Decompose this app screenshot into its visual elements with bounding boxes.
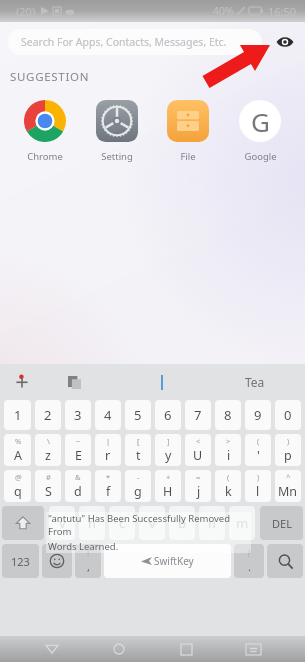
staticText: "antutu" Has Been Successfully Removed F… [48, 512, 249, 538]
staticText: 1 [14, 406, 22, 424]
staticText: n [88, 514, 97, 532]
staticText: n [208, 514, 217, 532]
button[interactable]: c [109, 506, 135, 540]
button[interactable]: Clipboard [62, 370, 86, 394]
button[interactable]: Home [104, 636, 134, 662]
button[interactable]: | [95, 434, 121, 466]
button[interactable]: Recents [171, 636, 201, 662]
button[interactable]: 5 [125, 400, 151, 430]
staticText: 40% [213, 4, 234, 18]
staticText: > [226, 436, 231, 446]
staticText: f [106, 483, 111, 500]
staticText: ' [257, 447, 260, 464]
button[interactable]: v [139, 506, 165, 540]
staticText: 16:50 [268, 4, 297, 19]
staticText: 4 [104, 406, 112, 424]
button[interactable]: > [215, 434, 241, 466]
button[interactable]: n [79, 506, 105, 540]
button[interactable]: ] [155, 434, 181, 466]
button[interactable]: ( [215, 470, 241, 502]
button[interactable]: 1 [4, 400, 31, 430]
staticText: Mn [278, 483, 298, 500]
button[interactable]: Space [104, 544, 231, 578]
staticText: ) [257, 472, 260, 482]
button[interactable]: File [155, 97, 221, 165]
button[interactable]: 8 [215, 400, 241, 430]
button[interactable]: ^ [275, 470, 301, 502]
button[interactable]: * [95, 470, 121, 502]
staticText: G [251, 104, 270, 139]
staticText: < [196, 436, 201, 446]
button[interactable]: Shift [2, 506, 44, 540]
button[interactable]: DEL [260, 506, 303, 540]
button[interactable]: 6 [155, 400, 181, 430]
staticText: q [14, 483, 22, 500]
button[interactable]: [ [125, 434, 151, 466]
button[interactable]: 2 [35, 400, 61, 430]
button[interactable]: < [185, 434, 211, 466]
staticText: % [15, 436, 22, 446]
button[interactable]: + [155, 470, 181, 502]
button[interactable]: # [35, 470, 61, 502]
button[interactable]: Comma [75, 544, 101, 578]
button[interactable]: @ [4, 470, 31, 502]
button[interactable]: Setting [84, 97, 150, 165]
button[interactable]: Add sticker [10, 370, 34, 394]
staticText: ! [87, 548, 90, 559]
staticText: z [45, 447, 51, 464]
button[interactable]: v [49, 506, 75, 540]
button[interactable]: b [169, 506, 195, 540]
button[interactable]: = [185, 470, 211, 502]
staticText: . [248, 559, 251, 574]
button[interactable]: ) [245, 470, 271, 502]
staticText: v [149, 514, 156, 532]
button[interactable]: G [227, 97, 293, 165]
button[interactable]: % [4, 434, 31, 466]
button[interactable]: - [125, 470, 151, 502]
button[interactable]: m [229, 506, 255, 540]
button[interactable]: Emoji [42, 544, 72, 578]
staticText: t [136, 447, 141, 464]
button[interactable]: Back [37, 636, 67, 662]
button[interactable]: 9 [245, 400, 271, 430]
staticText: Search For Apps, Contacts, Messages, Etc… [21, 35, 227, 49]
staticText: 3 [74, 406, 82, 424]
button[interactable]: 4 [95, 400, 121, 430]
staticText: @ [15, 472, 22, 482]
button[interactable]: Search For Apps, Contacts, Messages, Etc… [8, 29, 262, 55]
button[interactable]: \ [35, 434, 61, 466]
staticText: , [87, 559, 90, 574]
button[interactable]: Show hidden apps [273, 30, 297, 54]
staticText: Words Learned. [48, 540, 119, 553]
staticText: Chrome [27, 150, 63, 163]
button[interactable]: 0 [275, 400, 301, 430]
button[interactable]: 7 [185, 400, 211, 430]
staticText: SwiftKey [154, 554, 194, 568]
button[interactable]: Tea [239, 370, 271, 394]
staticText: g [134, 483, 142, 500]
button[interactable]: Search [267, 544, 303, 578]
button[interactable]: Period [234, 544, 264, 578]
staticText: A [14, 447, 22, 464]
staticText: # [46, 472, 51, 482]
button[interactable]: n [199, 506, 225, 540]
button[interactable]: & [65, 470, 91, 502]
staticText: Setting [101, 150, 133, 163]
button[interactable]: ( [245, 434, 271, 466]
staticText: 7 [194, 406, 202, 424]
staticText: 8 [224, 406, 232, 424]
button[interactable]: 3 [65, 400, 91, 430]
button[interactable]: Hide keyboard [238, 636, 268, 662]
button[interactable]: ) [275, 434, 301, 466]
staticText: (20) [16, 4, 36, 19]
staticText: H [163, 483, 173, 500]
staticText: 2 [44, 406, 52, 424]
staticText: DEL [272, 516, 292, 531]
staticText: v [59, 514, 66, 532]
button[interactable]: Chrome [12, 97, 78, 165]
staticText: ) [287, 436, 290, 446]
staticText: c [119, 514, 126, 532]
staticText: 0 [284, 406, 292, 424]
button[interactable]: ~ [65, 434, 91, 466]
button[interactable]: 123 [2, 544, 39, 578]
